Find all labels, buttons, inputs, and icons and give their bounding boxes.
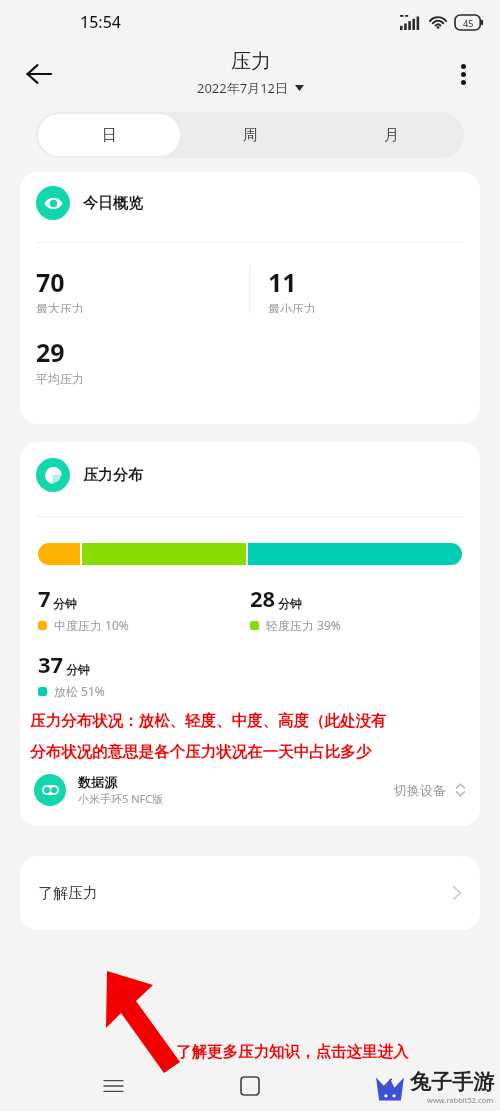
staticText: 11 [268, 265, 297, 299]
button[interactable]: Back [363, 1061, 413, 1111]
staticText: 37 [38, 649, 64, 679]
staticText: 7 [38, 583, 51, 613]
staticText: 切换设备 [394, 782, 446, 798]
staticText: 分钟 [66, 662, 90, 677]
staticText: 29 [36, 335, 65, 369]
staticText: 小米手环5 NFC版 [78, 791, 164, 806]
staticText: 压力分布状况：放松、轻度、中度、高度（此处没有 [30, 711, 387, 731]
staticText: 70 [36, 265, 65, 299]
button[interactable]: 数据源 [20, 768, 480, 812]
staticText: 45 [463, 17, 474, 29]
button[interactable]: 今日概览 [20, 172, 480, 424]
staticText: 分布状况的意思是各个压力状况在一天中占比多少 [30, 742, 371, 762]
staticText: 压力分布 [83, 466, 143, 485]
button[interactable]: 周 [180, 114, 321, 156]
staticText: 中度压力 10% [54, 617, 129, 633]
staticText: 平均压力 [36, 371, 84, 386]
staticText: 轻度压力 39% [266, 617, 341, 633]
button[interactable]: Home [225, 1061, 275, 1111]
button[interactable]: 压力分布 [20, 458, 480, 492]
staticText: 压力 [231, 49, 271, 74]
button[interactable]: 日 [38, 114, 180, 156]
staticText: 兔子手游 [410, 1069, 494, 1095]
staticText: www.rabbit52.com [427, 1095, 494, 1105]
staticText: 放松 51% [54, 683, 105, 699]
staticText: 分钟 [278, 596, 302, 611]
button[interactable]: 2022年7月12日 [193, 77, 308, 99]
button[interactable]: Back [16, 51, 62, 97]
staticText: 28 [250, 583, 276, 613]
staticText: 2022年7月12日 [197, 79, 289, 97]
staticText: 周 [243, 126, 258, 145]
staticText: 最小压力 [268, 301, 316, 313]
staticText: 日 [102, 126, 117, 145]
staticText: 月 [384, 126, 399, 145]
staticText: 15:54 [80, 11, 121, 33]
staticText: 了解更多压力知识，点击这里进入 [176, 1042, 409, 1062]
staticText: 今日概览 [83, 194, 143, 213]
button[interactable]: 了解压力 [20, 856, 480, 930]
staticText: 分钟 [53, 596, 77, 611]
staticText: 了解压力 [38, 884, 452, 903]
button[interactable]: 月 [321, 114, 462, 156]
staticText: 数据源 [78, 774, 117, 790]
button[interactable]: More options [440, 51, 486, 97]
staticText: 最大压力 [36, 301, 84, 313]
button[interactable]: Recents [88, 1061, 138, 1111]
